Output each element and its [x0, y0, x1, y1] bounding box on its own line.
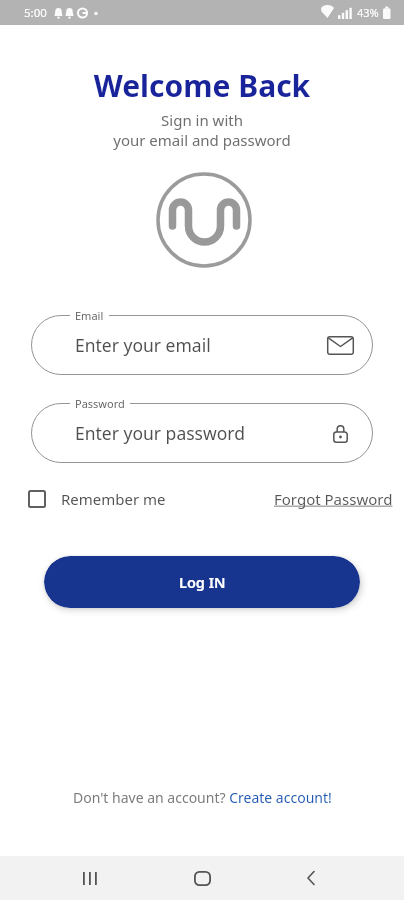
- button[interactable]: Don't have an account? Create account!: [0, 788, 404, 807]
- button[interactable]: Remember me: [28, 489, 166, 509]
- staticText: Don't have an account? Create account!: [73, 788, 332, 807]
- staticText: Remember me: [61, 489, 166, 509]
- button[interactable]: [68, 856, 112, 900]
- button[interactable]: [289, 856, 333, 900]
- staticText: Welcome Back: [0, 65, 404, 106]
- staticText: 43%: [357, 5, 379, 20]
- button[interactable]: Enter your email: [31, 315, 373, 375]
- staticText: 5:00: [24, 5, 47, 21]
- staticText: Sign in with your email and password: [0, 110, 404, 150]
- staticText: Log IN: [179, 572, 226, 592]
- staticText: Password: [75, 396, 125, 411]
- staticText: Enter your password: [75, 421, 245, 445]
- staticText: Enter your email: [75, 333, 211, 357]
- button[interactable]: [180, 856, 224, 900]
- button[interactable]: Forgot Password: [274, 489, 393, 509]
- staticText: Email: [75, 308, 104, 323]
- button[interactable]: Enter your password: [31, 403, 373, 463]
- button[interactable]: Log IN: [44, 556, 360, 608]
